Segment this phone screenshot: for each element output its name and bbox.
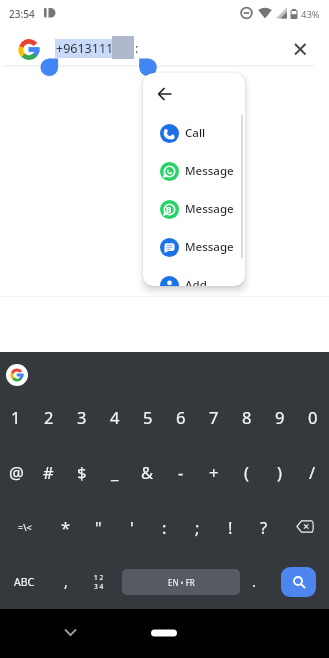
button[interactable]: =\< (0, 499, 49, 554)
staticText: Message (185, 163, 234, 179)
button[interactable]: / (296, 444, 329, 499)
button[interactable]: " (82, 499, 115, 554)
staticText: 3 4 (94, 582, 104, 591)
staticText: ! (228, 516, 233, 538)
button[interactable]: $ (65, 444, 98, 499)
staticText: # (43, 461, 54, 483)
staticText: 4 (110, 406, 120, 428)
staticText: 1 2 (94, 573, 104, 582)
button[interactable]: 5 (131, 390, 164, 444)
staticText: - (178, 461, 184, 483)
button[interactable]: ? (247, 499, 280, 554)
button[interactable] (145, 621, 183, 645)
button[interactable]: * (49, 499, 82, 554)
staticText: ABC (14, 575, 35, 589)
button[interactable]: , (49, 554, 82, 609)
staticText: Add (185, 277, 207, 286)
staticText: B (166, 204, 172, 215)
button[interactable] (143, 73, 187, 115)
button[interactable]: 9 (263, 390, 296, 444)
staticText: 7 (209, 406, 219, 428)
button[interactable]: # (32, 444, 65, 499)
button[interactable]: ( (230, 444, 263, 499)
staticText: : (162, 516, 167, 538)
staticText: $ (77, 461, 87, 483)
staticText: +9613111 (56, 40, 114, 57)
button[interactable]: : (148, 499, 181, 554)
button[interactable] (55, 619, 85, 649)
staticText: 23:54 (9, 7, 35, 21)
button[interactable] (6, 364, 28, 386)
staticText: / (309, 461, 316, 483)
staticText: . (252, 572, 256, 591)
staticText: ) (277, 461, 282, 483)
button[interactable]: 4 (98, 390, 131, 444)
button[interactable]: Message (143, 190, 245, 228)
staticText: 3 (77, 406, 87, 428)
staticText: EN • FR (168, 577, 195, 588)
button[interactable]: - (164, 444, 197, 499)
button[interactable]: & (131, 444, 164, 499)
staticText: Call (185, 125, 206, 141)
button[interactable]: ; (181, 499, 214, 554)
staticText: , (64, 572, 68, 591)
button[interactable]: ) (263, 444, 296, 499)
button[interactable]: + (197, 444, 230, 499)
button[interactable]: 3 (65, 390, 98, 444)
button[interactable]: 2 (32, 390, 65, 444)
staticText: _ (111, 461, 119, 483)
staticText: 6 (176, 406, 186, 428)
staticText: @ (9, 461, 24, 483)
button[interactable]: @ (0, 444, 32, 499)
button[interactable]: 0 (296, 390, 329, 444)
button[interactable]: 1 2 (82, 554, 115, 609)
staticText: Message (185, 239, 234, 255)
staticText: & (141, 461, 154, 483)
staticText: 2 (44, 406, 54, 428)
button[interactable]: ! (214, 499, 247, 554)
button[interactable]: EN • FR (122, 569, 240, 595)
button[interactable]: 7 (197, 390, 230, 444)
staticText: 8 (242, 406, 252, 428)
staticText: =\< (18, 521, 32, 533)
button[interactable] (280, 499, 329, 554)
button[interactable] (281, 567, 316, 597)
staticText: 0 (308, 406, 318, 428)
button[interactable]: _ (98, 444, 131, 499)
button[interactable]: 1 (0, 390, 32, 444)
staticText: ; (195, 516, 200, 538)
staticText: ( (244, 461, 249, 483)
button[interactable]: Message (143, 228, 245, 266)
staticText: Message (185, 201, 234, 217)
staticText: ' (130, 516, 134, 538)
button[interactable]: ' (115, 499, 148, 554)
staticText: + (209, 461, 219, 483)
staticText: 1 (11, 406, 21, 428)
staticText: * (61, 516, 71, 538)
button[interactable] (288, 37, 312, 61)
staticText: 5 (143, 406, 153, 428)
button[interactable]: ABC (0, 554, 49, 609)
button[interactable]: Call (143, 114, 245, 152)
staticText: 9 (275, 406, 285, 428)
staticText: ? (260, 516, 268, 538)
staticText: 43% (301, 8, 320, 21)
button[interactable]: 6 (164, 390, 197, 444)
button[interactable]: 8 (230, 390, 263, 444)
button[interactable]: Message (143, 152, 245, 190)
staticText: " (95, 516, 102, 538)
button[interactable]: Add (143, 266, 245, 286)
button[interactable]: . (240, 554, 268, 609)
staticText: : (135, 40, 139, 57)
